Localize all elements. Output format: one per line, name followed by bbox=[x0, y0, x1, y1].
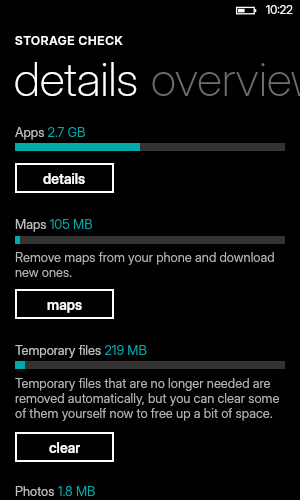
button[interactable]: clear bbox=[15, 432, 114, 462]
staticText: Apps 2.7 GB bbox=[15, 124, 86, 140]
staticText: Maps 105 MB bbox=[15, 216, 93, 232]
staticText: Temporary files 219 MB bbox=[15, 342, 147, 358]
button[interactable]: details bbox=[15, 163, 114, 193]
staticText: Photos 1.8 MB bbox=[15, 483, 96, 499]
staticText: Remove maps from your phone and download… bbox=[15, 249, 290, 280]
button[interactable]: maps bbox=[15, 289, 114, 319]
staticText: STORAGE CHECK bbox=[15, 33, 124, 48]
staticText: overview bbox=[151, 50, 300, 107]
staticText: 10:22 bbox=[266, 3, 293, 17]
staticText: details bbox=[43, 170, 86, 187]
staticText: Temporary files that are no longer neede… bbox=[15, 375, 290, 421]
staticText: details bbox=[14, 50, 138, 107]
other: Battery bbox=[235, 5, 258, 16]
staticText: clear bbox=[49, 439, 81, 456]
staticText: maps bbox=[47, 296, 83, 313]
